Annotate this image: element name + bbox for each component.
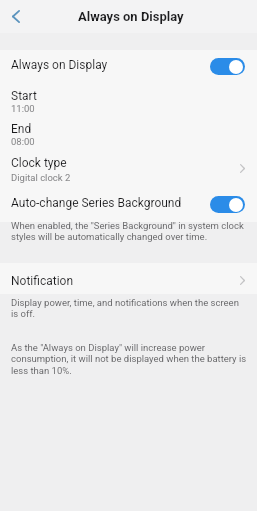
staticText: End bbox=[11, 122, 32, 136]
button[interactable] bbox=[0, 81, 257, 114]
staticText: Auto-change Series Background bbox=[11, 196, 182, 210]
staticText: 11:00 bbox=[11, 103, 35, 114]
staticText: Start bbox=[11, 89, 37, 103]
button[interactable]: Toggle bbox=[210, 58, 245, 75]
button[interactable] bbox=[0, 263, 257, 294]
staticText: When enabled, the "Series Background" in… bbox=[11, 220, 248, 242]
staticText: Clock type bbox=[11, 156, 67, 170]
staticText: Notification bbox=[11, 274, 74, 288]
staticText: Display power, time, and notifications w… bbox=[11, 297, 248, 319]
staticText: Always on Display bbox=[11, 58, 108, 72]
button[interactable]: Toggle bbox=[210, 196, 245, 213]
staticText: Digital clock 2 bbox=[11, 172, 71, 183]
button[interactable] bbox=[0, 183, 257, 222]
button[interactable]: Back bbox=[0, 0, 32, 32]
button[interactable] bbox=[0, 114, 257, 148]
staticText: 08:00 bbox=[11, 136, 35, 147]
button[interactable] bbox=[0, 50, 257, 81]
button[interactable] bbox=[0, 148, 257, 183]
staticText: Always on Display bbox=[78, 9, 184, 24]
staticText: As the "Always on Display" will increase… bbox=[11, 342, 248, 376]
